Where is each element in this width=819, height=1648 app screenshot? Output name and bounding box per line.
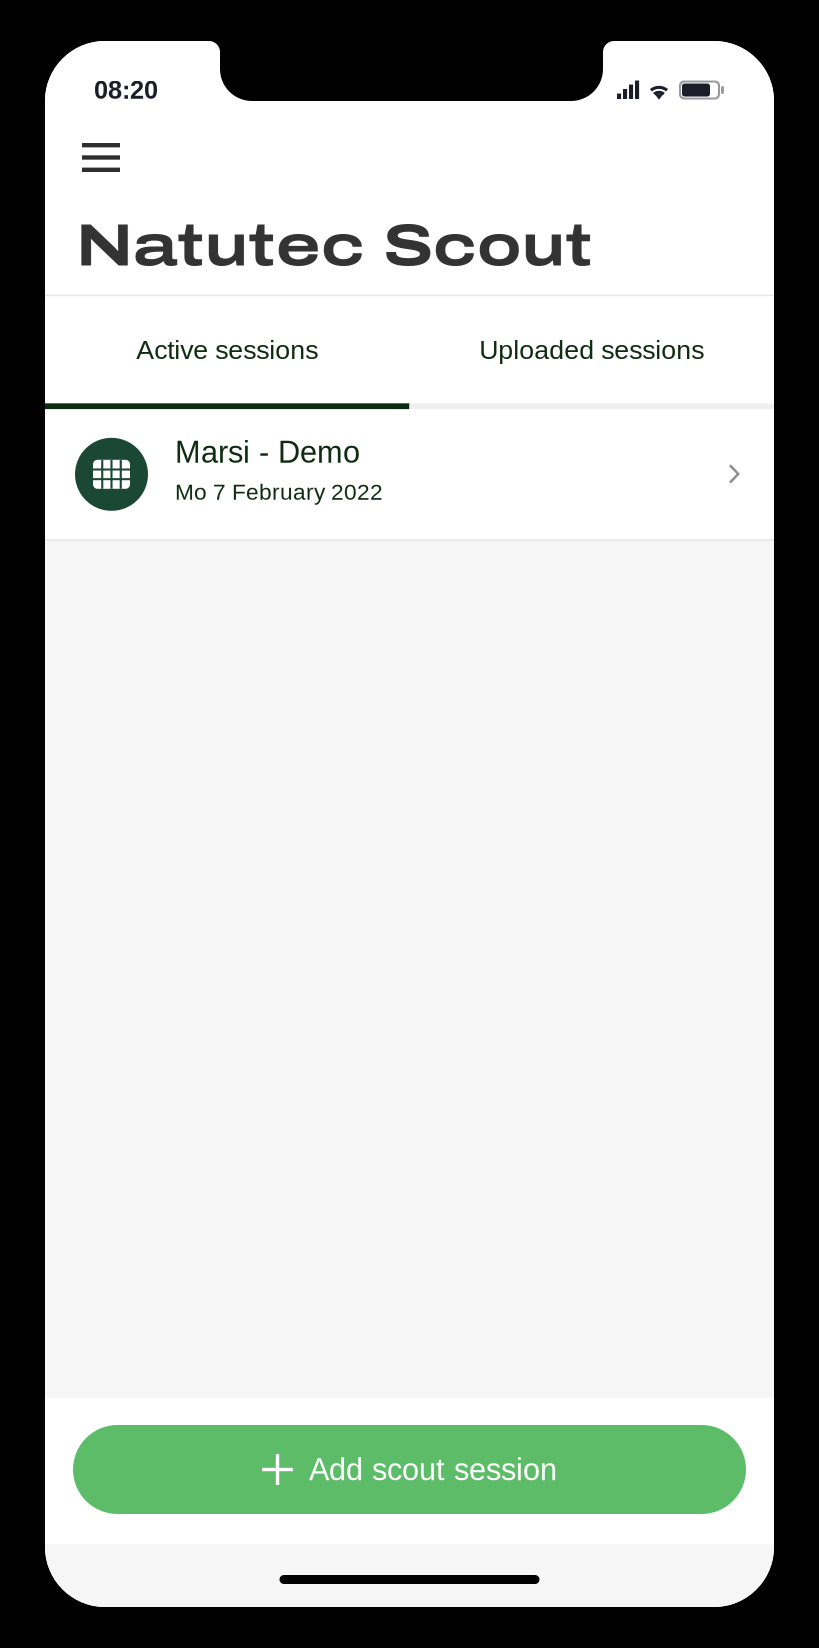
staticText: 08:20 bbox=[94, 76, 158, 104]
staticText: Mo 7 February 2022 bbox=[175, 479, 383, 505]
button[interactable]: Open menu bbox=[76, 131, 140, 184]
staticText: Natutec Scout bbox=[76, 214, 593, 278]
button[interactable]: Uploaded sessions bbox=[409, 296, 774, 409]
staticText: Add scout session bbox=[309, 1452, 557, 1487]
button[interactable]: Active sessions bbox=[45, 296, 409, 409]
button[interactable]: Marsi - Demo bbox=[45, 409, 774, 539]
staticText: Uploaded sessions bbox=[479, 335, 704, 365]
button[interactable]: Add scout session bbox=[73, 1425, 746, 1514]
staticText: Active sessions bbox=[136, 335, 318, 365]
staticText: Marsi - Demo bbox=[175, 435, 360, 469]
